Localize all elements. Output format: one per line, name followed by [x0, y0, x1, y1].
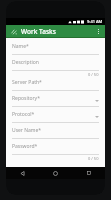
- staticText: Password*: [12, 143, 38, 150]
- staticText: Protocol*: [12, 111, 35, 118]
- staticText: Repository*: [12, 95, 40, 102]
- button[interactable]: Home: [39, 167, 72, 179]
- button[interactable]: Name*: [12, 43, 99, 55]
- button[interactable]: Description: [12, 59, 99, 77]
- button[interactable]: Back: [6, 167, 39, 179]
- staticText: Work Tasks: [21, 27, 56, 36]
- staticText: 0 / 50: [88, 156, 99, 161]
- staticText: 0 / 50: [88, 72, 99, 77]
- staticText: User Name*: [12, 127, 42, 134]
- button[interactable]: More options: [94, 25, 102, 38]
- button[interactable]: Repository*: [12, 95, 99, 107]
- staticText: Server Path*: [12, 79, 42, 86]
- staticText: Description: [12, 59, 39, 66]
- button[interactable]: Recent apps: [72, 167, 105, 179]
- button[interactable]: App icon: [9, 27, 18, 36]
- staticText: 9:41 AM: [87, 19, 103, 24]
- button[interactable]: Protocol*: [12, 111, 99, 123]
- button[interactable]: User Name*: [12, 127, 99, 139]
- button[interactable]: Password*: [12, 143, 99, 161]
- button[interactable]: Server Path*: [12, 79, 99, 91]
- staticText: Name*: [12, 43, 29, 50]
